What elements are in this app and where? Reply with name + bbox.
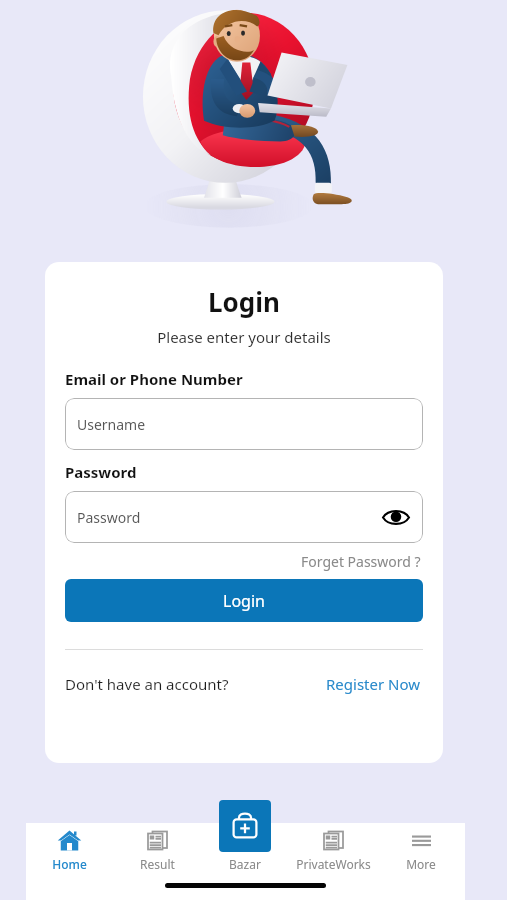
- button[interactable]: Result: [113, 823, 201, 872]
- staticText: Login: [45, 284, 443, 319]
- staticText: Email or Phone Number: [65, 369, 243, 389]
- button[interactable]: Bazar: [219, 800, 271, 852]
- button[interactable]: Login: [65, 579, 423, 622]
- staticText: Password: [77, 508, 141, 527]
- staticText: Username: [77, 415, 146, 434]
- button[interactable]: Password: [65, 491, 423, 543]
- button[interactable]: PrivateWorks: [289, 823, 377, 872]
- staticText: More: [406, 856, 436, 872]
- staticText: Result: [140, 856, 175, 872]
- staticText: Forget Password ?: [301, 552, 421, 571]
- staticText: Password: [65, 462, 137, 482]
- staticText: Register Now: [326, 674, 421, 694]
- button[interactable]: Bazar: [201, 823, 289, 872]
- button[interactable]: Home: [26, 823, 113, 872]
- staticText: Login: [223, 590, 265, 612]
- staticText: Don't have an account?: [65, 674, 229, 694]
- staticText: Bazar: [229, 856, 261, 872]
- button[interactable]: Forget Password ?: [299, 550, 423, 573]
- staticText: Home: [52, 856, 87, 872]
- staticText: Please enter your details: [45, 327, 443, 347]
- button[interactable]: Username: [65, 398, 423, 450]
- button[interactable]: Register Now: [324, 672, 423, 696]
- button[interactable]: Show password: [381, 502, 411, 532]
- staticText: PrivateWorks: [296, 856, 371, 872]
- button[interactable]: More: [377, 823, 465, 872]
